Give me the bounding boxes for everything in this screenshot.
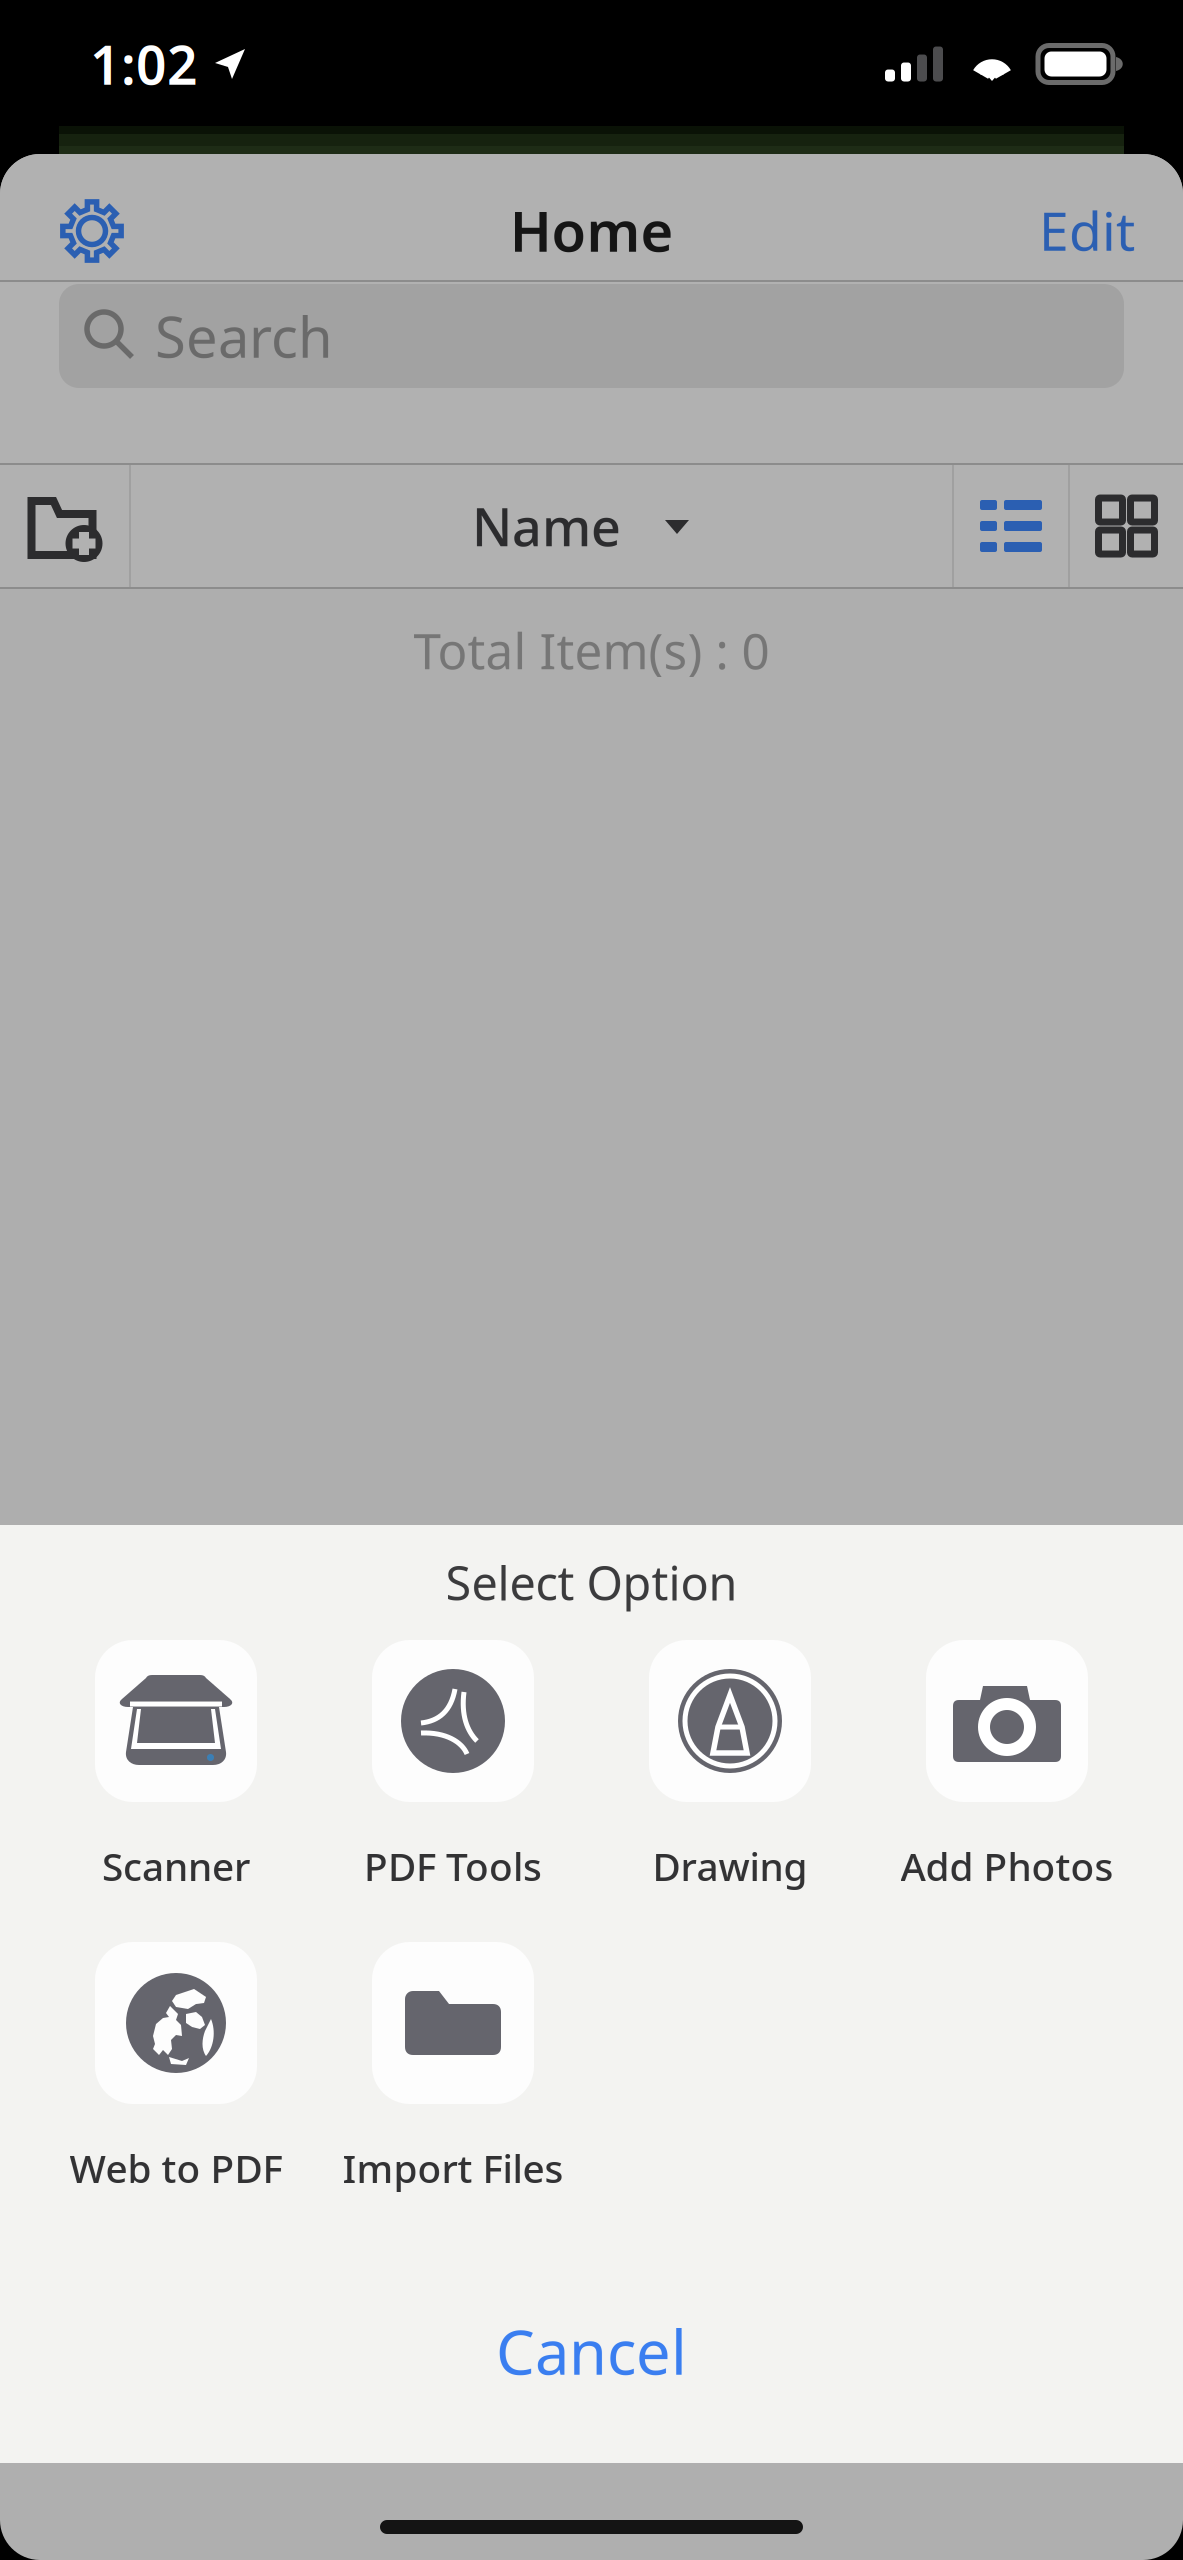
staticText: 1:02 [90, 29, 198, 99]
staticText: Add Photos [900, 1840, 1113, 1892]
staticText: Edit [1039, 195, 1135, 265]
staticText: Select Option [445, 1551, 737, 1613]
button[interactable]: Scanner [37, 1640, 314, 1942]
button[interactable]: Edit [1017, 154, 1183, 280]
button[interactable]: Name [131, 465, 952, 587]
button[interactable]: PDF Tools [314, 1640, 591, 1942]
button[interactable]: Settings [0, 140, 184, 294]
button[interactable]: Grid view [1070, 465, 1183, 587]
staticText: Web to PDF [69, 2142, 282, 2194]
button[interactable]: New Folder [0, 465, 129, 587]
button[interactable]: Cancel [0, 2287, 1183, 2415]
staticText: PDF Tools [364, 1840, 542, 1892]
staticText: Home [509, 193, 673, 267]
staticText: Scanner [102, 1840, 250, 1892]
button[interactable]: List view [954, 465, 1068, 587]
staticText: Total Item(s) : 0 [413, 617, 769, 683]
button[interactable]: Add Photos [868, 1640, 1145, 1942]
staticText: Name [472, 491, 621, 561]
button[interactable]: Drawing [591, 1640, 868, 1942]
staticText: Cancel [496, 2310, 687, 2392]
button[interactable]: Web to PDF [37, 1942, 314, 2244]
staticText: Drawing [652, 1840, 807, 1892]
staticText: Import Files [342, 2142, 563, 2194]
button[interactable]: Import Files [314, 1942, 591, 2244]
staticText: Search [155, 299, 333, 373]
